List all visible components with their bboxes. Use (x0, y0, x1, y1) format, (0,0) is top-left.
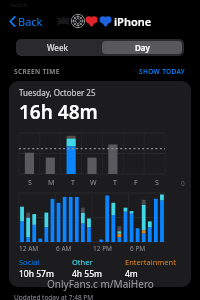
button[interactable]: Entertainment (125, 257, 183, 280)
staticText: 12 PM (93, 244, 112, 253)
staticText: 6 AM (56, 244, 72, 253)
button[interactable]: Other (72, 257, 125, 280)
staticText: W (90, 178, 97, 188)
staticText: Search (10, 1, 28, 8)
staticText: S (155, 178, 159, 188)
staticText: 10h 57m (19, 268, 54, 280)
staticText: 12 AM (19, 244, 39, 253)
button[interactable]: Tuesday, October 25 (9, 81, 191, 287)
staticText: Day (135, 42, 150, 53)
other: Heart (85, 15, 98, 28)
other: Heart (99, 15, 112, 28)
staticText: 0 (181, 179, 185, 188)
staticText: Tuesday, October 25 (19, 87, 96, 98)
staticText: iPhone (114, 14, 152, 29)
staticText: 16h 48m (19, 99, 98, 125)
staticText: T (113, 178, 117, 188)
staticText: 4m (125, 268, 138, 280)
other: Spider web (71, 14, 85, 28)
staticText: T (71, 178, 75, 188)
button[interactable]: Back (7, 12, 45, 31)
button[interactable]: Social (19, 257, 72, 280)
staticText: M (48, 178, 55, 188)
button[interactable]: Week (16, 39, 100, 56)
staticText: 4h 55m (72, 268, 102, 280)
staticText: Back (18, 14, 43, 29)
button[interactable]: Day (102, 41, 182, 54)
staticText: SCREEN TIME (14, 67, 60, 76)
staticText: Entertainment (125, 257, 176, 267)
staticText: Updated today at 7:48 PM (14, 293, 94, 300)
staticText: OnlyFans.c m/MaiHero (47, 277, 154, 291)
button[interactable]: SHOW TODAY (139, 67, 186, 76)
staticText: Week (47, 42, 69, 53)
other: Spider (57, 15, 70, 28)
staticText: F (134, 178, 138, 188)
staticText: 6 PM (130, 244, 146, 253)
staticText: S (28, 178, 32, 188)
staticText: Other (72, 257, 93, 267)
staticText: Social (19, 257, 40, 267)
staticText: SHOW TODAY (139, 67, 186, 76)
